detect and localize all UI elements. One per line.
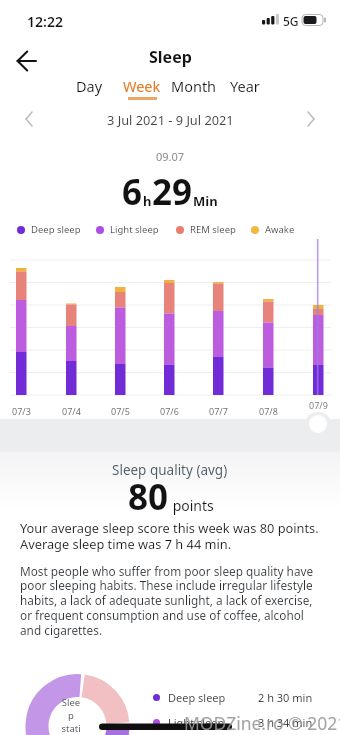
button[interactable] — [298, 105, 326, 133]
staticText: Slee p stati — [61, 696, 81, 735]
staticText: 07/4 — [62, 405, 81, 417]
staticText: Day — [76, 76, 103, 96]
staticText: 6 — [122, 168, 143, 216]
staticText: points — [169, 496, 214, 515]
staticText: 12:22 — [27, 12, 63, 31]
staticText: MODZine.ro © 2021 — [184, 711, 340, 735]
staticText: Sleep quality (avg) — [112, 461, 228, 479]
staticText: Deep sleep — [168, 690, 226, 705]
staticText: 09.07 — [156, 149, 185, 164]
staticText: Min — [193, 192, 218, 210]
staticText: Light sleep — [110, 223, 159, 236]
staticText: 5G — [283, 13, 299, 29]
staticText: 07/5 — [111, 405, 130, 417]
staticText: Your average sleep score this week was 8… — [20, 519, 319, 553]
staticText: 3 h 34 min — [258, 715, 313, 730]
staticText: Month — [171, 76, 217, 96]
button[interactable]: Month — [171, 76, 217, 96]
button[interactable]: Day — [76, 76, 103, 96]
staticText: h — [143, 192, 152, 210]
button[interactable]: Year — [230, 76, 260, 96]
staticText: REM sleep — [190, 223, 236, 236]
button[interactable] — [14, 105, 42, 133]
staticText: Deep sleep — [31, 223, 81, 236]
button[interactable]: Week — [123, 76, 161, 96]
staticText: 07/8 — [259, 405, 278, 417]
staticText: 07/7 — [209, 405, 228, 417]
button[interactable] — [309, 415, 327, 433]
staticText: 07/6 — [160, 405, 179, 417]
staticText: 80 — [128, 473, 169, 521]
staticText: Most people who suffer from poor sleep q… — [20, 563, 314, 639]
staticText: 07/3 — [12, 405, 31, 417]
staticText: Sleep — [149, 46, 192, 68]
button[interactable] — [8, 46, 44, 76]
staticText: Week — [123, 76, 161, 96]
staticText: Awake — [265, 223, 295, 236]
staticText: 29 — [152, 168, 193, 216]
staticText: Light sleep — [168, 715, 225, 730]
staticText: 3 Jul 2021 - 9 Jul 2021 — [107, 111, 234, 128]
staticText: 2 h 30 min — [258, 690, 313, 705]
staticText: 07/9 — [309, 399, 328, 411]
staticText: Year — [230, 76, 260, 96]
